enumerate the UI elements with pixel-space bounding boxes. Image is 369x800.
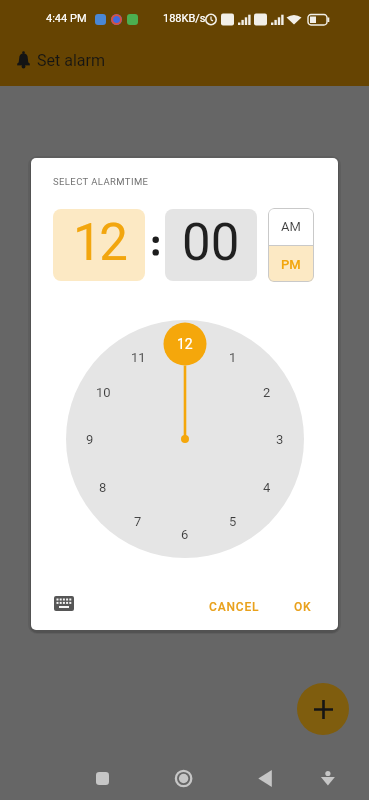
staticText: 2 bbox=[263, 385, 271, 400]
button[interactable]: 11 bbox=[124, 347, 152, 367]
button[interactable]: 2 bbox=[253, 382, 281, 402]
button[interactable] bbox=[123, 756, 185, 800]
button[interactable]: 4 bbox=[253, 477, 281, 497]
button[interactable]: 10 bbox=[89, 382, 117, 402]
staticText: 1 bbox=[229, 350, 237, 365]
button[interactable]: OK bbox=[294, 600, 312, 614]
button[interactable] bbox=[51, 592, 77, 614]
button[interactable]: 00 bbox=[165, 209, 257, 281]
staticText: 9 bbox=[86, 432, 94, 447]
button[interactable]: 12 bbox=[53, 209, 145, 281]
staticText: 12 bbox=[73, 213, 126, 273]
staticText: 7 bbox=[134, 514, 142, 529]
staticText: 11 bbox=[131, 350, 146, 365]
button[interactable]: PM bbox=[268, 246, 314, 282]
button[interactable]: 1 bbox=[219, 347, 247, 367]
button[interactable]: 5 bbox=[219, 511, 247, 531]
staticText: OK bbox=[294, 600, 312, 614]
staticText: PM bbox=[281, 257, 301, 272]
staticText: 4:44 PM bbox=[46, 12, 87, 25]
button[interactable]: 12 bbox=[171, 334, 199, 354]
staticText: 00 bbox=[182, 213, 240, 273]
staticText: CANCEL bbox=[209, 600, 260, 614]
button[interactable]: 7 bbox=[124, 511, 152, 531]
button[interactable]: 9 bbox=[76, 429, 104, 449]
button[interactable]: CANCEL bbox=[209, 600, 260, 614]
button[interactable]: AM bbox=[268, 208, 314, 245]
staticText: Set alarm bbox=[37, 51, 105, 70]
button[interactable] bbox=[297, 683, 349, 735]
button[interactable]: 6 bbox=[171, 524, 199, 544]
staticText: 8 bbox=[99, 480, 107, 495]
button[interactable] bbox=[247, 756, 309, 800]
button[interactable] bbox=[60, 756, 123, 800]
staticText: SELECT ALARMTIME bbox=[53, 176, 149, 187]
staticText: 5 bbox=[229, 514, 237, 529]
staticText: 3 bbox=[276, 432, 284, 447]
staticText: 6 bbox=[181, 527, 189, 542]
button[interactable]: 8 bbox=[89, 477, 117, 497]
button[interactable]: 3 bbox=[266, 429, 294, 449]
staticText: 188KB/s bbox=[163, 12, 206, 25]
staticText: 10 bbox=[96, 385, 111, 400]
staticText: 12 bbox=[177, 336, 193, 352]
staticText: AM bbox=[281, 219, 301, 234]
button[interactable] bbox=[185, 756, 247, 800]
staticText: 4 bbox=[263, 480, 271, 495]
